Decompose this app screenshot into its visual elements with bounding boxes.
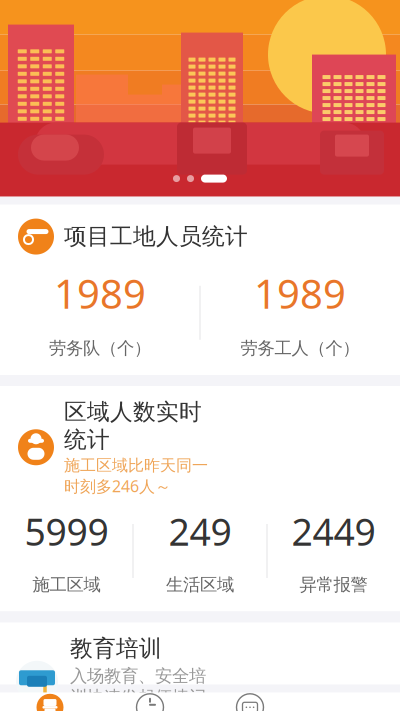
staticText: 异常报警 (299, 574, 367, 595)
button[interactable]: 巡检 (100, 693, 200, 711)
staticText: 施工区域比昨天同一时刻多246人～ (64, 456, 208, 497)
staticText: 1989 (54, 267, 146, 320)
staticText: 生活区域 (166, 574, 234, 595)
staticText: 1989 (254, 267, 346, 320)
staticText: 施工区域 (32, 574, 100, 595)
staticText: 2449 (291, 507, 375, 556)
button[interactable]: 项目工地人员统计 (0, 205, 400, 375)
button[interactable]: 首页 (0, 693, 100, 711)
staticText: 项目工地人员统计 (64, 223, 248, 250)
staticText: 区域人数实时统计 (64, 398, 202, 454)
staticText: 5999 (24, 507, 108, 556)
staticText: 劳务工人（个） (240, 338, 359, 359)
button[interactable]: 消息 (200, 693, 300, 711)
staticText: 教育培训 (70, 634, 162, 662)
button[interactable]: 教育培训 (0, 622, 400, 684)
staticText: 249 (168, 507, 231, 556)
button[interactable]: 区域人数实时统计 (0, 386, 400, 611)
staticText: 入场教育、安全培训快速发起便捷记录 (70, 665, 206, 711)
staticText: 劳务队（个） (49, 338, 151, 359)
